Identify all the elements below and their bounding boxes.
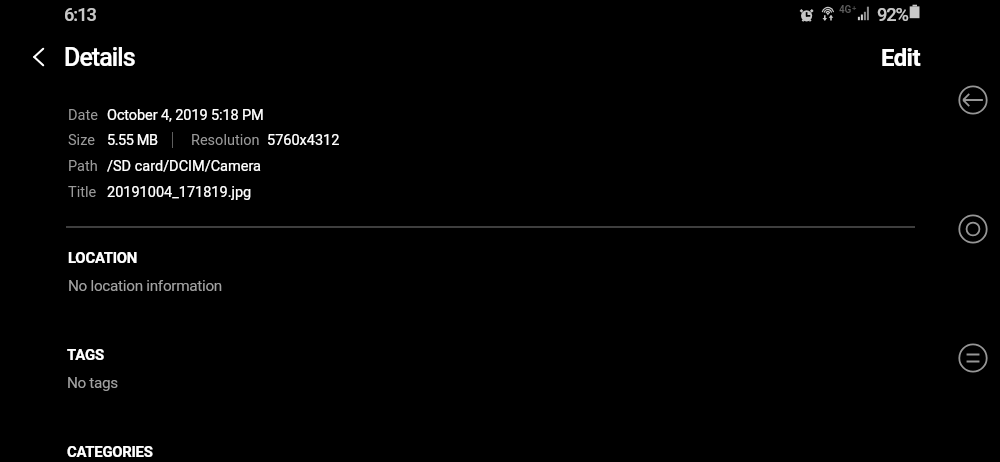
button[interactable]: Recent apps	[951, 336, 995, 380]
button[interactable]: Back	[951, 78, 995, 122]
staticText: October 4, 2019 5:18 PM	[107, 107, 264, 124]
staticText: Title	[68, 184, 97, 201]
staticText: Date	[68, 107, 98, 124]
staticText: Resolution	[191, 132, 260, 149]
staticText: +	[852, 4, 857, 13]
staticText: No location information	[68, 277, 223, 295]
staticText: 5760x4312	[267, 132, 340, 149]
staticText: /SD card/DCIM/Camera	[107, 158, 261, 175]
staticText: LOCATION	[68, 249, 138, 266]
button[interactable]: Navigate up	[14, 33, 62, 81]
button[interactable]: Edit	[865, 34, 935, 82]
button[interactable]: Home	[951, 207, 995, 251]
staticText: Edit	[881, 44, 920, 72]
staticText: 5.55 MB	[107, 132, 158, 149]
staticText: No tags	[67, 374, 118, 392]
staticText: TAGS	[67, 346, 105, 363]
staticText: Size	[68, 132, 95, 149]
staticText: 92%	[877, 4, 908, 25]
staticText: Details	[64, 43, 135, 72]
staticText: 4G	[839, 4, 851, 16]
staticText: Path	[68, 158, 98, 175]
staticText: 6:13	[64, 4, 96, 25]
staticText: CATEGORIES	[67, 443, 153, 460]
staticText: 20191004_171819.jpg	[107, 184, 252, 201]
